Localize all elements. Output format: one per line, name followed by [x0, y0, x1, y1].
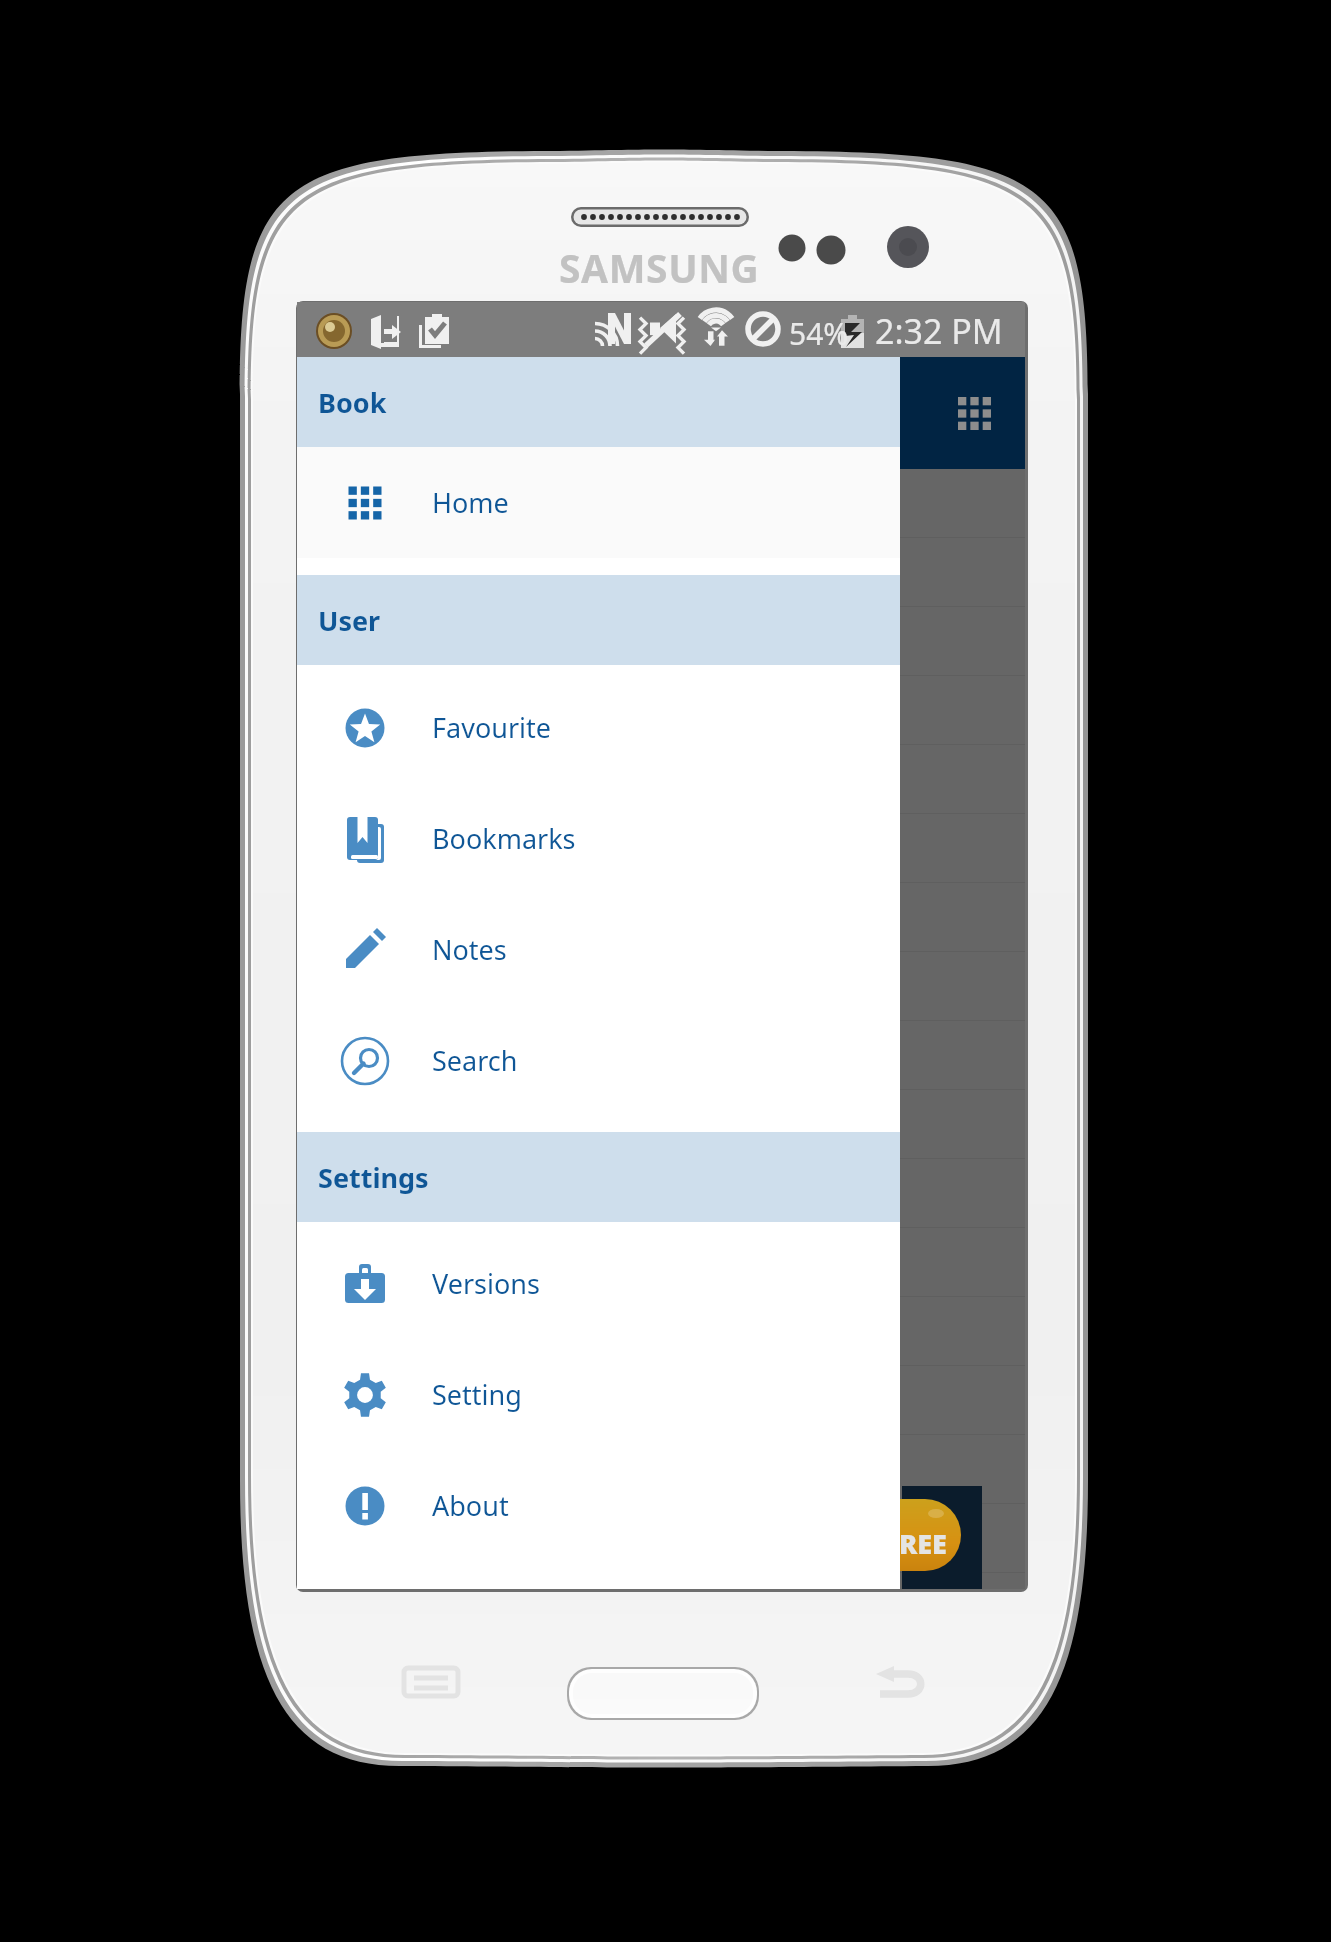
staticText: 54% [789, 313, 849, 354]
staticText: About [432, 1487, 509, 1524]
button[interactable]: Setting [297, 1339, 900, 1450]
staticText: Search [432, 1042, 518, 1079]
button[interactable]: Home [297, 447, 900, 558]
button[interactable]: Bookmarks [297, 783, 900, 894]
button[interactable]: Notes [297, 894, 900, 1005]
button[interactable]: Search [297, 1005, 900, 1116]
staticText: User [318, 602, 381, 639]
staticText: Book [318, 384, 387, 421]
staticText: Bookmarks [432, 820, 576, 857]
staticText: REE [899, 1525, 947, 1562]
button[interactable]: Favourite [297, 672, 900, 783]
staticText: Versions [432, 1265, 540, 1302]
button[interactable]: Apps grid [944, 383, 1004, 443]
staticText: Setting [432, 1376, 522, 1413]
staticText: SAMSUNG [559, 241, 760, 294]
button[interactable]: Versions [297, 1228, 900, 1339]
staticText: Notes [432, 931, 507, 968]
staticText: 2:32 PM [875, 308, 1003, 354]
button[interactable]: Advertisement [902, 1486, 982, 1589]
staticText: Settings [318, 1159, 429, 1196]
staticText: Favourite [432, 709, 551, 746]
button[interactable]: About [297, 1450, 900, 1561]
staticText: Home [432, 484, 509, 521]
